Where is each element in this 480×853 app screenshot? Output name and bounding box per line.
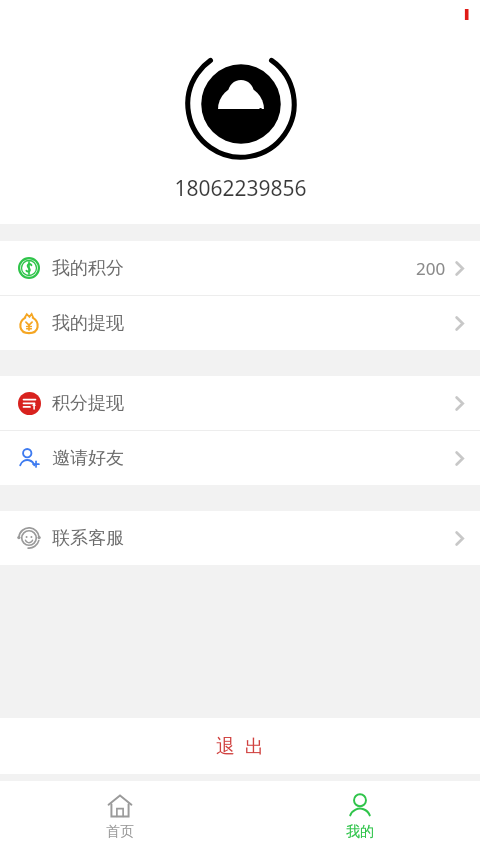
staticText: 邀请好友 [52,447,124,470]
staticText: 18062239856 [174,174,307,203]
button[interactable]: 退 出 [0,718,480,774]
staticText: 我的提现 [52,312,124,335]
button[interactable]: 联系客服 [0,511,480,565]
button[interactable]: 我的 [240,785,480,849]
staticText: 我的积分 [52,257,124,280]
button[interactable]: 首页 [0,785,240,849]
other: Avatar [185,48,297,160]
button[interactable]: 我的提现 [0,296,480,350]
staticText: 我的 [346,823,374,841]
staticText: 200 [416,257,446,280]
button[interactable]: 积分提现 [0,376,480,430]
other: 我的 [347,793,373,819]
other: 首页 [107,793,133,819]
button[interactable]: 我的积分 [0,241,480,295]
staticText: 首页 [106,823,134,841]
staticText: 联系客服 [52,527,124,550]
staticText: 积分提现 [52,392,124,415]
staticText: 退 出 [216,733,264,759]
button[interactable]: 邀请好友 [0,431,480,485]
